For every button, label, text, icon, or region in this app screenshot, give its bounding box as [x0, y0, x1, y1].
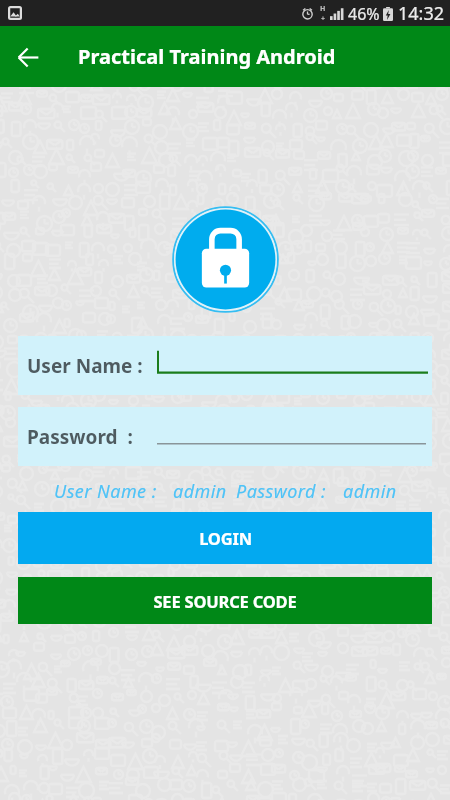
- staticText: Password :: [236, 479, 327, 504]
- staticText: User Name :: [27, 353, 143, 379]
- button[interactable]: SEE SOURCE CODE: [18, 577, 432, 624]
- staticText: SEE SOURCE CODE: [153, 590, 297, 612]
- button[interactable]: Back: [6, 35, 50, 79]
- button[interactable]: User Name :: [18, 336, 432, 395]
- staticText: LOGIN: [199, 527, 252, 549]
- button[interactable]: Password :: [18, 407, 432, 466]
- staticText: Practical Training Android: [78, 43, 336, 70]
- staticText: User Name :: [54, 479, 157, 504]
- staticText: H: [320, 4, 326, 14]
- staticText: admin: [343, 479, 397, 504]
- staticText: Password :: [27, 424, 133, 450]
- staticText: 14:32: [398, 1, 445, 26]
- staticText: 46%: [348, 3, 380, 25]
- staticText: admin: [173, 479, 227, 504]
- button[interactable]: LOGIN: [18, 512, 432, 564]
- staticText: +: [321, 14, 326, 24]
